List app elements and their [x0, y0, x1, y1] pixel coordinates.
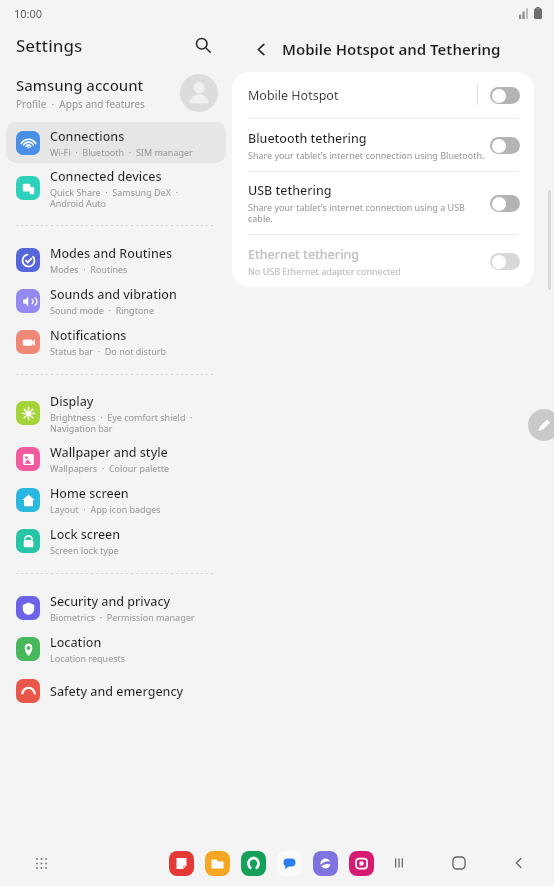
staticText: Connections	[50, 128, 125, 145]
button[interactable]: Samsung Notes	[169, 851, 194, 876]
button[interactable]: Connected devices	[6, 163, 226, 213]
button[interactable]: Bluetooth tethering	[232, 119, 534, 171]
staticText: Display	[50, 393, 94, 410]
staticText: Quick Share · Samsung DeX · Android Auto	[50, 186, 179, 209]
staticText: Wallpapers · Colour palette	[50, 462, 169, 474]
staticText: Safety and emergency	[50, 683, 184, 700]
staticText: Wallpaper and style	[50, 444, 168, 461]
button[interactable]: Back	[248, 36, 274, 62]
staticText: Wi-Fi · Bluetooth · SIM manager	[50, 146, 193, 158]
staticText: Share your tablet's internet connection …	[248, 201, 465, 224]
staticText: Modes and Routines	[50, 245, 172, 262]
staticText: No USB Ethernet adapter connected	[248, 265, 401, 277]
button[interactable]: All apps	[28, 850, 54, 876]
staticText: Mobile Hotspot and Tethering	[282, 39, 501, 59]
button[interactable]: Modes and Routines	[6, 239, 226, 280]
button[interactable]: Display	[6, 388, 226, 438]
button[interactable]: Toggle	[490, 137, 520, 154]
button[interactable]: USB tethering	[232, 172, 534, 234]
staticText: Screen lock type	[50, 544, 119, 556]
button[interactable]: Ethernet tethering	[232, 235, 534, 287]
button[interactable]: Security and privacy	[6, 587, 226, 628]
button[interactable]: Sounds and vibration	[6, 280, 226, 321]
staticText: Mobile Hotspot	[248, 87, 339, 104]
staticText: Profile · Apps and features	[16, 97, 145, 111]
staticText: 10:00	[14, 6, 43, 21]
button[interactable]: Home screen	[6, 479, 226, 520]
button[interactable]: My Files	[205, 851, 230, 876]
staticText: Location requests	[50, 652, 126, 664]
button[interactable]: Messages	[277, 851, 302, 876]
staticText: Sound mode · Ringtone	[50, 304, 154, 316]
staticText: Connected devices	[50, 168, 162, 185]
staticText: Security and privacy	[50, 593, 171, 610]
button[interactable]: Samsung account	[0, 64, 232, 122]
staticText: Sounds and vibration	[50, 286, 177, 303]
staticText: Lock screen	[50, 526, 121, 543]
button[interactable]: Toggle	[490, 253, 520, 270]
button[interactable]: Safety and emergency	[6, 669, 226, 713]
button[interactable]: Wallpaper and style	[6, 438, 226, 479]
button[interactable]: Toggle	[490, 87, 520, 104]
button[interactable]: Toggle	[490, 195, 520, 212]
button[interactable]: Home	[446, 850, 472, 876]
staticText: Home screen	[50, 485, 129, 502]
button[interactable]: Mobile Hotspot	[232, 72, 534, 118]
staticText: Biometrics · Permission manager	[50, 611, 195, 623]
staticText: Settings	[16, 34, 83, 57]
staticText: Samsung account	[16, 75, 144, 95]
button[interactable]: Back	[506, 850, 532, 876]
staticText: Modes · Routines	[50, 263, 128, 275]
staticText: Share your tablet's internet connection …	[248, 149, 485, 161]
button[interactable]: Location	[6, 628, 226, 669]
staticText: Brightness · Eye comfort shield · Naviga…	[50, 411, 193, 434]
staticText: Ethernet tethering	[248, 246, 360, 263]
button[interactable]: Gallery	[349, 851, 374, 876]
button[interactable]: Recents	[386, 850, 412, 876]
button[interactable]: Edit	[528, 409, 554, 441]
staticText: Layout · App icon badges	[50, 503, 161, 515]
button[interactable]: Lock screen	[6, 520, 226, 561]
button[interactable]: Phone	[241, 851, 266, 876]
staticText: Bluetooth tethering	[248, 130, 367, 147]
button[interactable]: Notifications	[6, 321, 226, 362]
button[interactable]: Internet	[313, 851, 338, 876]
button[interactable]: Connections	[6, 122, 226, 163]
staticText: Location	[50, 634, 102, 651]
button[interactable]: Search	[188, 30, 218, 60]
staticText: Status bar · Do not disturb	[50, 345, 166, 357]
staticText: USB tethering	[248, 182, 332, 199]
staticText: Notifications	[50, 327, 127, 344]
